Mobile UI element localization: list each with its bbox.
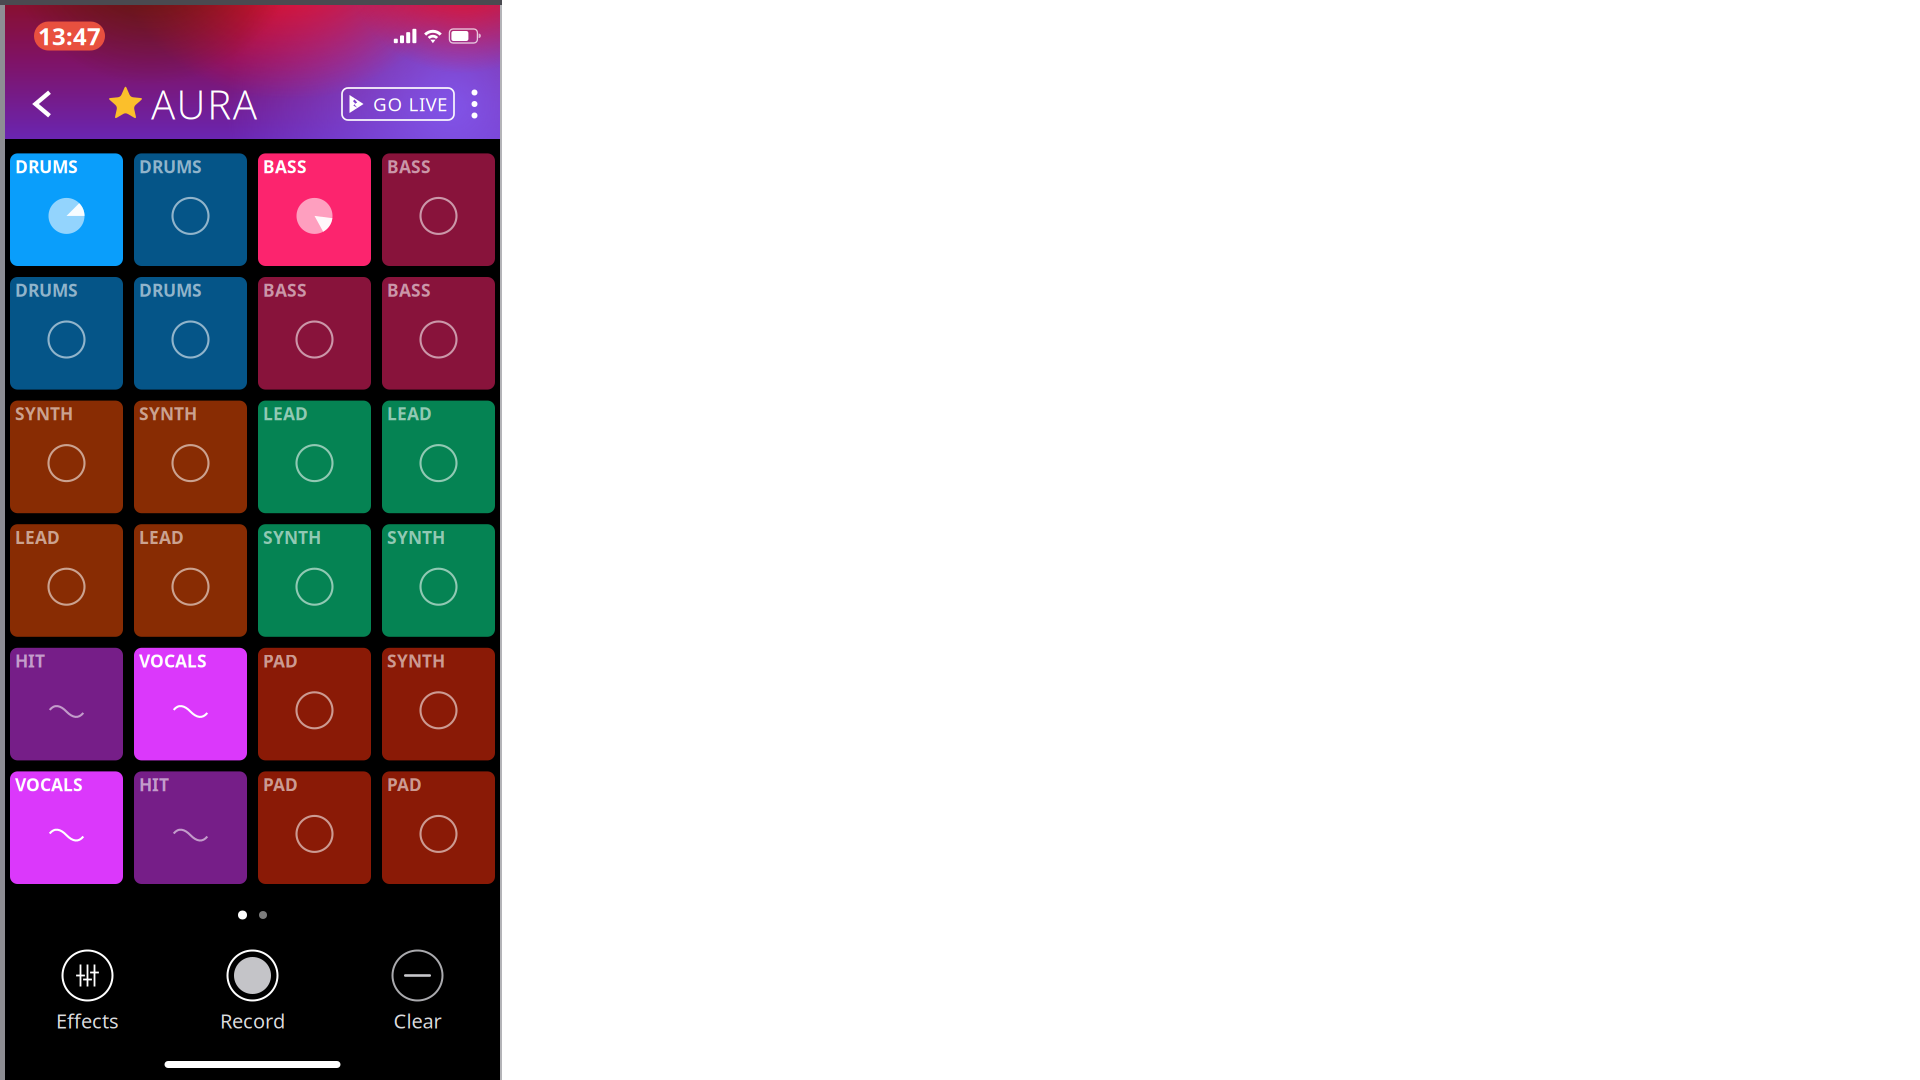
staticText: PAD [387, 773, 422, 796]
button[interactable]: BASS [382, 277, 495, 390]
staticText: SYNTH [139, 402, 197, 425]
staticText: GO LIVE [373, 92, 447, 116]
staticText: SYNTH [15, 402, 73, 425]
button[interactable]: SYNTH [382, 524, 495, 637]
staticText: VOCALS [15, 773, 83, 796]
staticText: BASS [263, 155, 307, 178]
staticText: HIT [15, 649, 45, 672]
staticText: AURA [151, 77, 257, 130]
staticText: DRUMS [139, 278, 202, 301]
staticText: Clear [393, 1007, 441, 1034]
staticText: LEAD [387, 402, 432, 425]
button[interactable]: DRUMS [10, 153, 123, 266]
staticText: BASS [387, 278, 431, 301]
button[interactable]: LEAD [134, 524, 247, 637]
button[interactable]: PAD [258, 771, 371, 884]
button[interactable]: More options [454, 82, 495, 126]
button[interactable]: Effects [5, 950, 170, 1034]
staticText: DRUMS [15, 155, 78, 178]
staticText: SYNTH [387, 526, 445, 549]
button[interactable]: LEAD [382, 401, 495, 513]
staticText: PAD [263, 649, 298, 672]
button[interactable]: PAD [258, 648, 371, 760]
button[interactable]: VOCALS [134, 648, 247, 760]
button[interactable]: LEAD [258, 401, 371, 513]
staticText: BASS [387, 155, 431, 178]
button[interactable]: HIT [134, 771, 247, 884]
staticText: PAD [263, 773, 298, 796]
staticText: DRUMS [15, 278, 78, 301]
staticText: Record [220, 1007, 285, 1034]
staticText: DRUMS [139, 155, 202, 178]
button[interactable]: HIT [10, 648, 123, 760]
button[interactable]: BASS [258, 277, 371, 390]
button[interactable]: BASS [258, 153, 371, 266]
button[interactable]: GO LIVE [342, 88, 454, 120]
staticText: HIT [139, 773, 169, 796]
button[interactable]: SYNTH [134, 401, 247, 513]
button[interactable]: Clear [335, 950, 500, 1034]
button[interactable]: DRUMS [134, 277, 247, 390]
staticText: SYNTH [263, 526, 321, 549]
button[interactable]: Record [170, 950, 335, 1034]
staticText: SYNTH [387, 649, 445, 672]
staticText: LEAD [15, 526, 60, 549]
button[interactable]: VOCALS [10, 771, 123, 884]
button[interactable]: Back [33, 82, 52, 126]
staticText: LEAD [263, 402, 308, 425]
staticText: 13:47 [38, 20, 101, 52]
staticText: VOCALS [139, 649, 207, 672]
staticText: BASS [263, 278, 307, 301]
button[interactable]: SYNTH [382, 648, 495, 760]
staticText: Effects [56, 1007, 119, 1034]
button[interactable]: PAD [382, 771, 495, 884]
button[interactable]: DRUMS [134, 153, 247, 266]
button[interactable]: LEAD [10, 524, 123, 637]
staticText: LEAD [139, 526, 184, 549]
button[interactable]: SYNTH [258, 524, 371, 637]
button[interactable]: BASS [382, 153, 495, 266]
button[interactable]: DRUMS [10, 277, 123, 390]
button[interactable]: SYNTH [10, 401, 123, 513]
